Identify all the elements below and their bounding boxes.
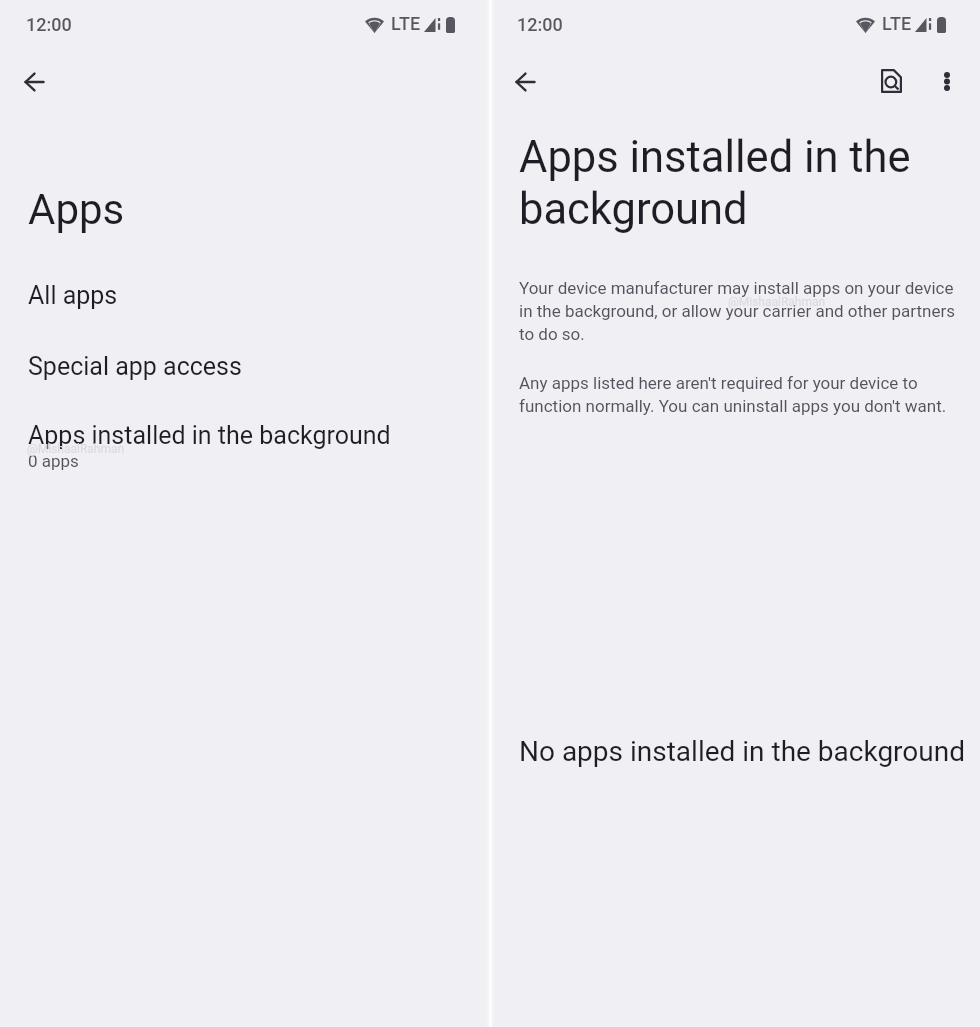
staticText: 12:00 bbox=[517, 14, 563, 35]
staticText: @MishaalRahman bbox=[728, 295, 826, 309]
staticText: Apps bbox=[28, 184, 125, 234]
button[interactable]: More options bbox=[922, 56, 972, 106]
staticText: Your device manufacturer may install app… bbox=[519, 275, 964, 344]
staticText: 12:00 bbox=[26, 14, 72, 35]
button[interactable]: Special app access bbox=[0, 338, 489, 409]
staticText: Special app access bbox=[28, 351, 242, 381]
staticText: Apps installed in the background bbox=[28, 420, 391, 450]
staticText: LTE bbox=[882, 13, 912, 34]
staticText: Any apps listed here aren't required for… bbox=[519, 370, 964, 416]
button[interactable]: Apps installed in the background bbox=[0, 407, 489, 478]
staticText: No apps installed in the background bbox=[519, 735, 965, 768]
button[interactable]: Search in page bbox=[866, 56, 916, 106]
staticText: All apps bbox=[28, 280, 118, 310]
button[interactable]: All apps bbox=[0, 267, 489, 338]
staticText: LTE bbox=[391, 13, 421, 34]
staticText: Apps installed in the background bbox=[519, 131, 911, 235]
button[interactable]: Navigate up bbox=[9, 57, 59, 107]
staticText: 0 apps bbox=[28, 451, 79, 471]
button[interactable]: Navigate up bbox=[500, 57, 550, 107]
staticText: @MishaalRahman bbox=[27, 442, 125, 456]
